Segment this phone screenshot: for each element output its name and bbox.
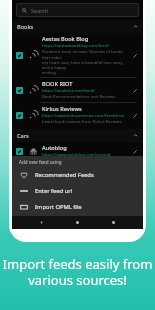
button[interactable]: Toggle Autoblog (16, 148, 23, 155)
staticText: Import feeds easily from various sources… (0, 255, 155, 288)
staticText: Latest book reviews from Kirkus Reviews. (42, 119, 123, 125)
staticText: Book Recommendations and Reviews (42, 94, 116, 100)
button[interactable]: Toggle Aestas Book Blog (16, 52, 23, 59)
staticText: Add new feed using (19, 159, 62, 165)
staticText: Recommended Feeds (35, 171, 94, 179)
staticText: Kirkus Reviews (42, 105, 82, 113)
staticText: Search (31, 7, 49, 14)
button[interactable]: Home (71, 216, 84, 229)
button[interactable]: Search (16, 3, 139, 17)
staticText: https://www.autoblog.com/rss.xml (42, 152, 111, 158)
staticText: Books (17, 23, 34, 31)
staticText: https://bookriot.com/feed/ (42, 88, 95, 94)
staticText: https://www.kirkusreviews.com/feeds/rss/ (42, 113, 125, 119)
staticText: https://aestasbookblog.com/feed/ (42, 43, 110, 49)
button[interactable]: Recents (107, 216, 120, 229)
staticText: Romance book reviews. Reviews of books t… (42, 49, 127, 75)
button[interactable]: Import OPML file (12, 199, 143, 215)
button[interactable]: Edit Aestas Book Blog (130, 51, 139, 60)
staticText: Cars (17, 132, 29, 140)
staticText: Enter feed url (35, 187, 73, 195)
button[interactable]: Recommended Feeds (12, 167, 143, 183)
button[interactable]: Toggle Autoblog (12, 142, 143, 160)
staticText: Aestas Book Blog (42, 35, 89, 43)
button[interactable]: Toggle Kirkus Reviews (16, 112, 23, 119)
button[interactable]: Edit Autoblog (130, 147, 139, 156)
button[interactable]: Cars (12, 129, 143, 142)
staticText: Import OPML file (35, 203, 82, 211)
button[interactable]: Toggle Kirkus Reviews (12, 103, 143, 127)
button[interactable]: Books (12, 20, 143, 33)
button[interactable]: Edit BOOK RIOT (130, 86, 139, 95)
staticText: Autoblog (42, 144, 67, 152)
button[interactable]: Toggle Aestas Book Blog (12, 33, 143, 77)
button[interactable]: Toggle BOOK RIOT (16, 87, 23, 94)
button[interactable]: Edit Kirkus Reviews (130, 111, 139, 120)
button[interactable]: Toggle BOOK RIOT (12, 78, 143, 102)
button[interactable]: Back (35, 216, 48, 229)
button[interactable]: Enter feed url (12, 183, 143, 199)
staticText: BOOK RIOT (42, 80, 73, 88)
